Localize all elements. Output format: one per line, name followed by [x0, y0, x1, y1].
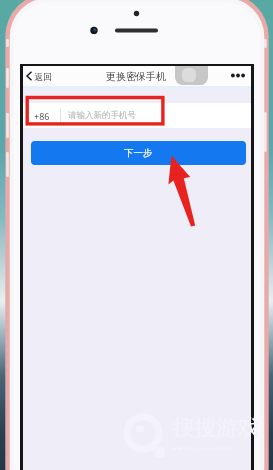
- staticText: +86: [34, 110, 50, 122]
- staticText: 下一步: [124, 147, 153, 159]
- button[interactable]: +86: [23, 103, 251, 128]
- staticText: 更换密保手机: [106, 70, 166, 83]
- staticText: 搜搜游戏: [173, 414, 259, 441]
- button[interactable]: More options: [226, 68, 250, 83]
- button[interactable]: 下一步: [31, 141, 246, 165]
- button[interactable]: 返回: [26, 66, 52, 86]
- staticText: 请输入新的手机号: [68, 110, 136, 121]
- staticText: 返回: [34, 71, 52, 82]
- button[interactable]: Profile avatar: [175, 66, 208, 85]
